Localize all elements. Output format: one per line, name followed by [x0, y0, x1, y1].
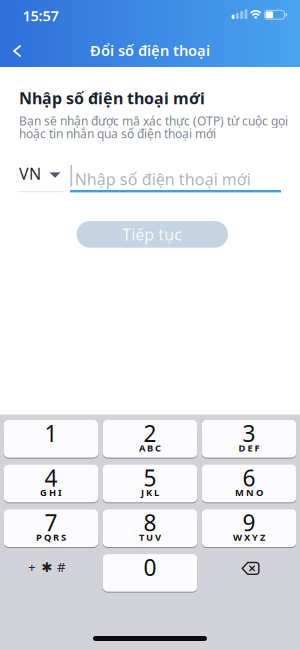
staticText: 1 [44, 418, 57, 448]
staticText: Tiếp tục [122, 224, 182, 245]
staticText: 9 [242, 507, 255, 537]
button[interactable]: 6 [202, 465, 296, 502]
staticText: 6 [242, 463, 255, 493]
staticText: Nhập số điện thoại mới [19, 87, 205, 109]
button[interactable]: VN [19, 163, 60, 184]
button[interactable]: 3 [202, 420, 296, 458]
button[interactable]: 1 [4, 420, 98, 458]
staticText: VN [19, 163, 41, 184]
staticText: 7 [44, 507, 57, 537]
button[interactable]: Delete [202, 554, 296, 592]
staticText: J K L [141, 486, 159, 499]
staticText: 15:57 [22, 6, 58, 25]
staticText: 2 [143, 418, 156, 448]
staticText: P Q R S [36, 531, 66, 543]
staticText: + ✱ # [28, 558, 66, 576]
button[interactable]: 9 [202, 509, 296, 547]
staticText: Nhập số điện thoại mới [75, 168, 251, 190]
staticText: 4 [44, 463, 57, 493]
staticText: 8 [143, 507, 156, 537]
staticText: 3 [242, 418, 255, 448]
staticText: Đổi số điện thoại [90, 40, 210, 60]
button[interactable]: Back [0, 34, 34, 68]
staticText: M N O [235, 486, 263, 499]
staticText: G H I [40, 486, 62, 499]
button[interactable]: 5 [103, 465, 197, 502]
staticText: A B C [139, 442, 161, 454]
button[interactable]: 8 [103, 509, 197, 547]
button[interactable]: 2 [103, 420, 197, 458]
button[interactable]: 4 [4, 465, 98, 502]
button[interactable]: Tiếp tục [76, 221, 228, 248]
staticText: Bạn sẽ nhận được mã xác thực (OTP) từ cu… [19, 113, 288, 141]
button[interactable]: 0 [103, 554, 197, 592]
staticText: 0 [143, 552, 156, 582]
button[interactable]: Nhập số điện thoại mới [70, 165, 281, 193]
button[interactable]: 7 [4, 509, 98, 547]
staticText: T U V [139, 531, 161, 543]
button[interactable]: Symbols [4, 554, 98, 592]
staticText: W X Y Z [233, 531, 265, 543]
staticText: 5 [143, 463, 156, 493]
staticText: D E F [238, 442, 259, 454]
